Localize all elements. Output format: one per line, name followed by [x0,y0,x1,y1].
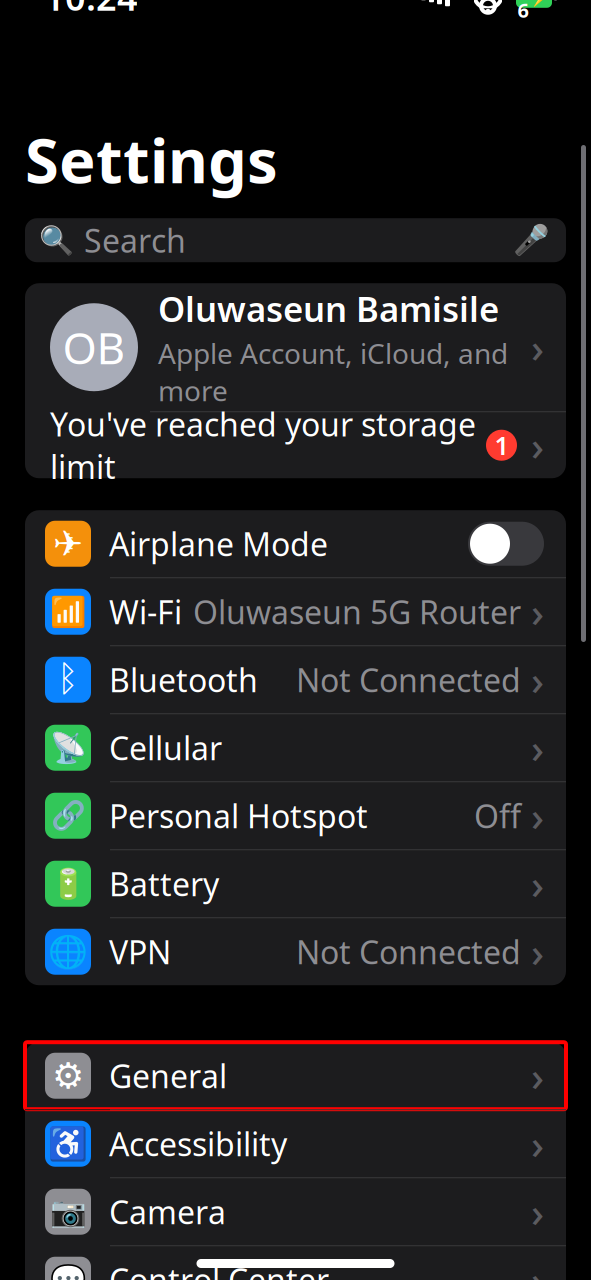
staticText: 🔍 [39,224,74,256]
staticText: 📷 [49,1195,86,1228]
staticText: › [531,1253,544,1280]
staticText: OB [62,318,125,376]
staticText: 📶 [49,595,86,628]
staticText: 🎤 [513,223,550,257]
staticText: General [109,1054,227,1097]
staticText: ♿ [48,1125,88,1162]
staticText: Search [84,219,186,261]
staticText: Settings [25,119,278,200]
staticText: ✈ [53,523,83,564]
button[interactable]: ᛒ [25,646,566,713]
staticText: 🔗 [50,800,85,832]
staticText: Bluetooth [109,658,258,701]
staticText: Wi-Fi [109,590,182,633]
staticText: VPN [109,930,171,973]
button[interactable]: ✈ [25,510,566,577]
staticText: › [531,721,544,774]
staticText: Camera [109,1190,226,1233]
staticText: 10:24 [44,0,138,21]
staticText: Not Connected [296,658,521,701]
button[interactable]: ⚙ [25,1042,566,1109]
staticText: 💬 [49,1263,86,1280]
button[interactable]: You've reached your storage limit [25,412,566,478]
staticText: Not Connected [296,930,521,973]
staticText: Personal Hotspot [109,794,368,837]
staticText: ᛒ [57,662,79,697]
staticText: 66 [517,0,528,23]
staticText: You've reached your storage limit [50,403,476,488]
button[interactable]: 🔋 [25,850,566,917]
staticText: Oluwaseun 5G Router [193,590,521,633]
staticText: Apple Account, iCloud, and more [158,335,508,409]
staticText: Control Center [109,1258,329,1280]
button[interactable]: OB [25,283,566,411]
staticText: Off [474,794,521,837]
button[interactable]: 🌐 [25,918,566,985]
button[interactable]: 🔗 [25,782,566,849]
staticText: Airplane Mode [109,522,328,565]
staticText: › [531,419,544,472]
staticText: › [531,321,544,374]
button[interactable]: 📡 [25,714,566,781]
staticText: Cellular [109,726,222,769]
staticText: › [531,653,544,706]
button[interactable]: ♿ [25,1110,566,1177]
staticText: › [531,1049,544,1102]
staticText: ⚡ [528,0,550,7]
staticText: › [531,1117,544,1170]
button[interactable]: 🔍 [25,218,566,262]
staticText: ⚙ [52,1055,84,1096]
staticText: › [531,857,544,910]
staticText: › [531,1185,544,1238]
staticText: 🌐 [48,933,88,970]
button[interactable]: 💬 [25,1246,566,1280]
staticText: Oluwaseun Bamisile [158,285,499,331]
staticText: Battery [109,862,219,905]
button[interactable]: 📷 [25,1178,566,1245]
staticText: 🔋 [49,867,86,900]
button[interactable]: 📶 [25,578,566,645]
staticText: Accessibility [109,1122,287,1165]
staticText: › [531,789,544,842]
staticText: › [531,925,544,978]
staticText: 📡 [49,731,86,764]
staticText: › [531,585,544,638]
staticText: 1 [494,428,508,462]
